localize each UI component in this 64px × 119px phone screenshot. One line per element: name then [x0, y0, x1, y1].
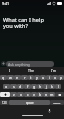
- button[interactable]: Add attachment: [1, 61, 6, 66]
- staticText: x: [20, 92, 22, 97]
- staticText: return: [53, 101, 61, 104]
- button[interactable]: l: [55, 84, 61, 89]
- button[interactable]: a: [3, 84, 10, 89]
- staticText: m: [50, 92, 54, 97]
- button[interactable]: I: [9, 68, 11, 73]
- button[interactable]: g: [31, 84, 37, 89]
- staticText: I'm: [51, 68, 56, 73]
- button[interactable]: u: [40, 75, 46, 80]
- staticText: space: [26, 101, 34, 105]
- staticText: i: [49, 75, 50, 80]
- staticText: a: [5, 84, 8, 89]
- staticText: z: [13, 92, 15, 97]
- button[interactable]: q: [0, 75, 7, 80]
- button[interactable]: c: [24, 92, 31, 97]
- staticText: l: [58, 84, 59, 89]
- button[interactable]: Ask anything: [6, 61, 54, 67]
- staticText: u: [42, 75, 45, 80]
- staticText: s: [13, 84, 15, 89]
- staticText: g: [33, 84, 36, 89]
- staticText: c: [27, 92, 29, 97]
- staticText: The: [28, 68, 34, 73]
- button[interactable]: z: [10, 92, 17, 97]
- button[interactable]: v: [31, 92, 37, 97]
- button[interactable]: h: [37, 84, 43, 89]
- button[interactable]: space: [9, 100, 50, 105]
- staticText: 9:41: [2, 1, 10, 6]
- button[interactable]: return: [50, 100, 64, 105]
- button[interactable]: f: [24, 84, 31, 89]
- button[interactable]: t: [28, 75, 34, 80]
- staticText: 123: [2, 101, 7, 105]
- button[interactable]: Microphone: [46, 108, 52, 114]
- staticText: n: [45, 92, 48, 97]
- button[interactable]: m: [49, 92, 55, 97]
- staticText: f: [27, 84, 29, 89]
- staticText: I: [9, 68, 11, 73]
- button[interactable]: i: [46, 75, 52, 80]
- staticText: j: [46, 84, 47, 89]
- button[interactable]: Backspace: [55, 92, 64, 97]
- staticText: q: [2, 75, 5, 80]
- staticText: Ask anything: [8, 62, 30, 67]
- button[interactable]: d: [17, 84, 24, 89]
- button[interactable]: x: [17, 92, 24, 97]
- button[interactable]: n: [43, 92, 49, 97]
- button[interactable]: y: [34, 75, 40, 80]
- button[interactable]: s: [10, 84, 17, 89]
- button[interactable]: w: [7, 75, 14, 80]
- staticText: r: [24, 75, 26, 80]
- button[interactable]: r: [21, 75, 28, 80]
- staticText: y: [36, 75, 38, 80]
- staticText: h: [39, 84, 42, 89]
- button[interactable]: o: [52, 75, 58, 80]
- staticText: o: [54, 75, 57, 80]
- staticText: p: [60, 75, 63, 80]
- button[interactable]: 123: [0, 100, 9, 105]
- staticText: k: [51, 84, 53, 89]
- staticText: e: [16, 75, 19, 80]
- staticText: b: [39, 92, 42, 97]
- button[interactable]: p: [58, 75, 64, 80]
- button[interactable]: k: [49, 84, 55, 89]
- button[interactable]: j: [43, 84, 49, 89]
- staticText: v: [33, 92, 35, 97]
- staticText: d: [19, 84, 22, 89]
- staticText: What can I help you with?: [3, 16, 44, 30]
- button[interactable]: b: [37, 92, 43, 97]
- staticText: w: [9, 75, 12, 80]
- button[interactable]: e: [14, 75, 21, 80]
- staticText: t: [30, 75, 32, 80]
- button[interactable]: The: [28, 68, 34, 73]
- button[interactable]: Shift: [0, 92, 10, 97]
- button[interactable]: I'm: [51, 68, 56, 73]
